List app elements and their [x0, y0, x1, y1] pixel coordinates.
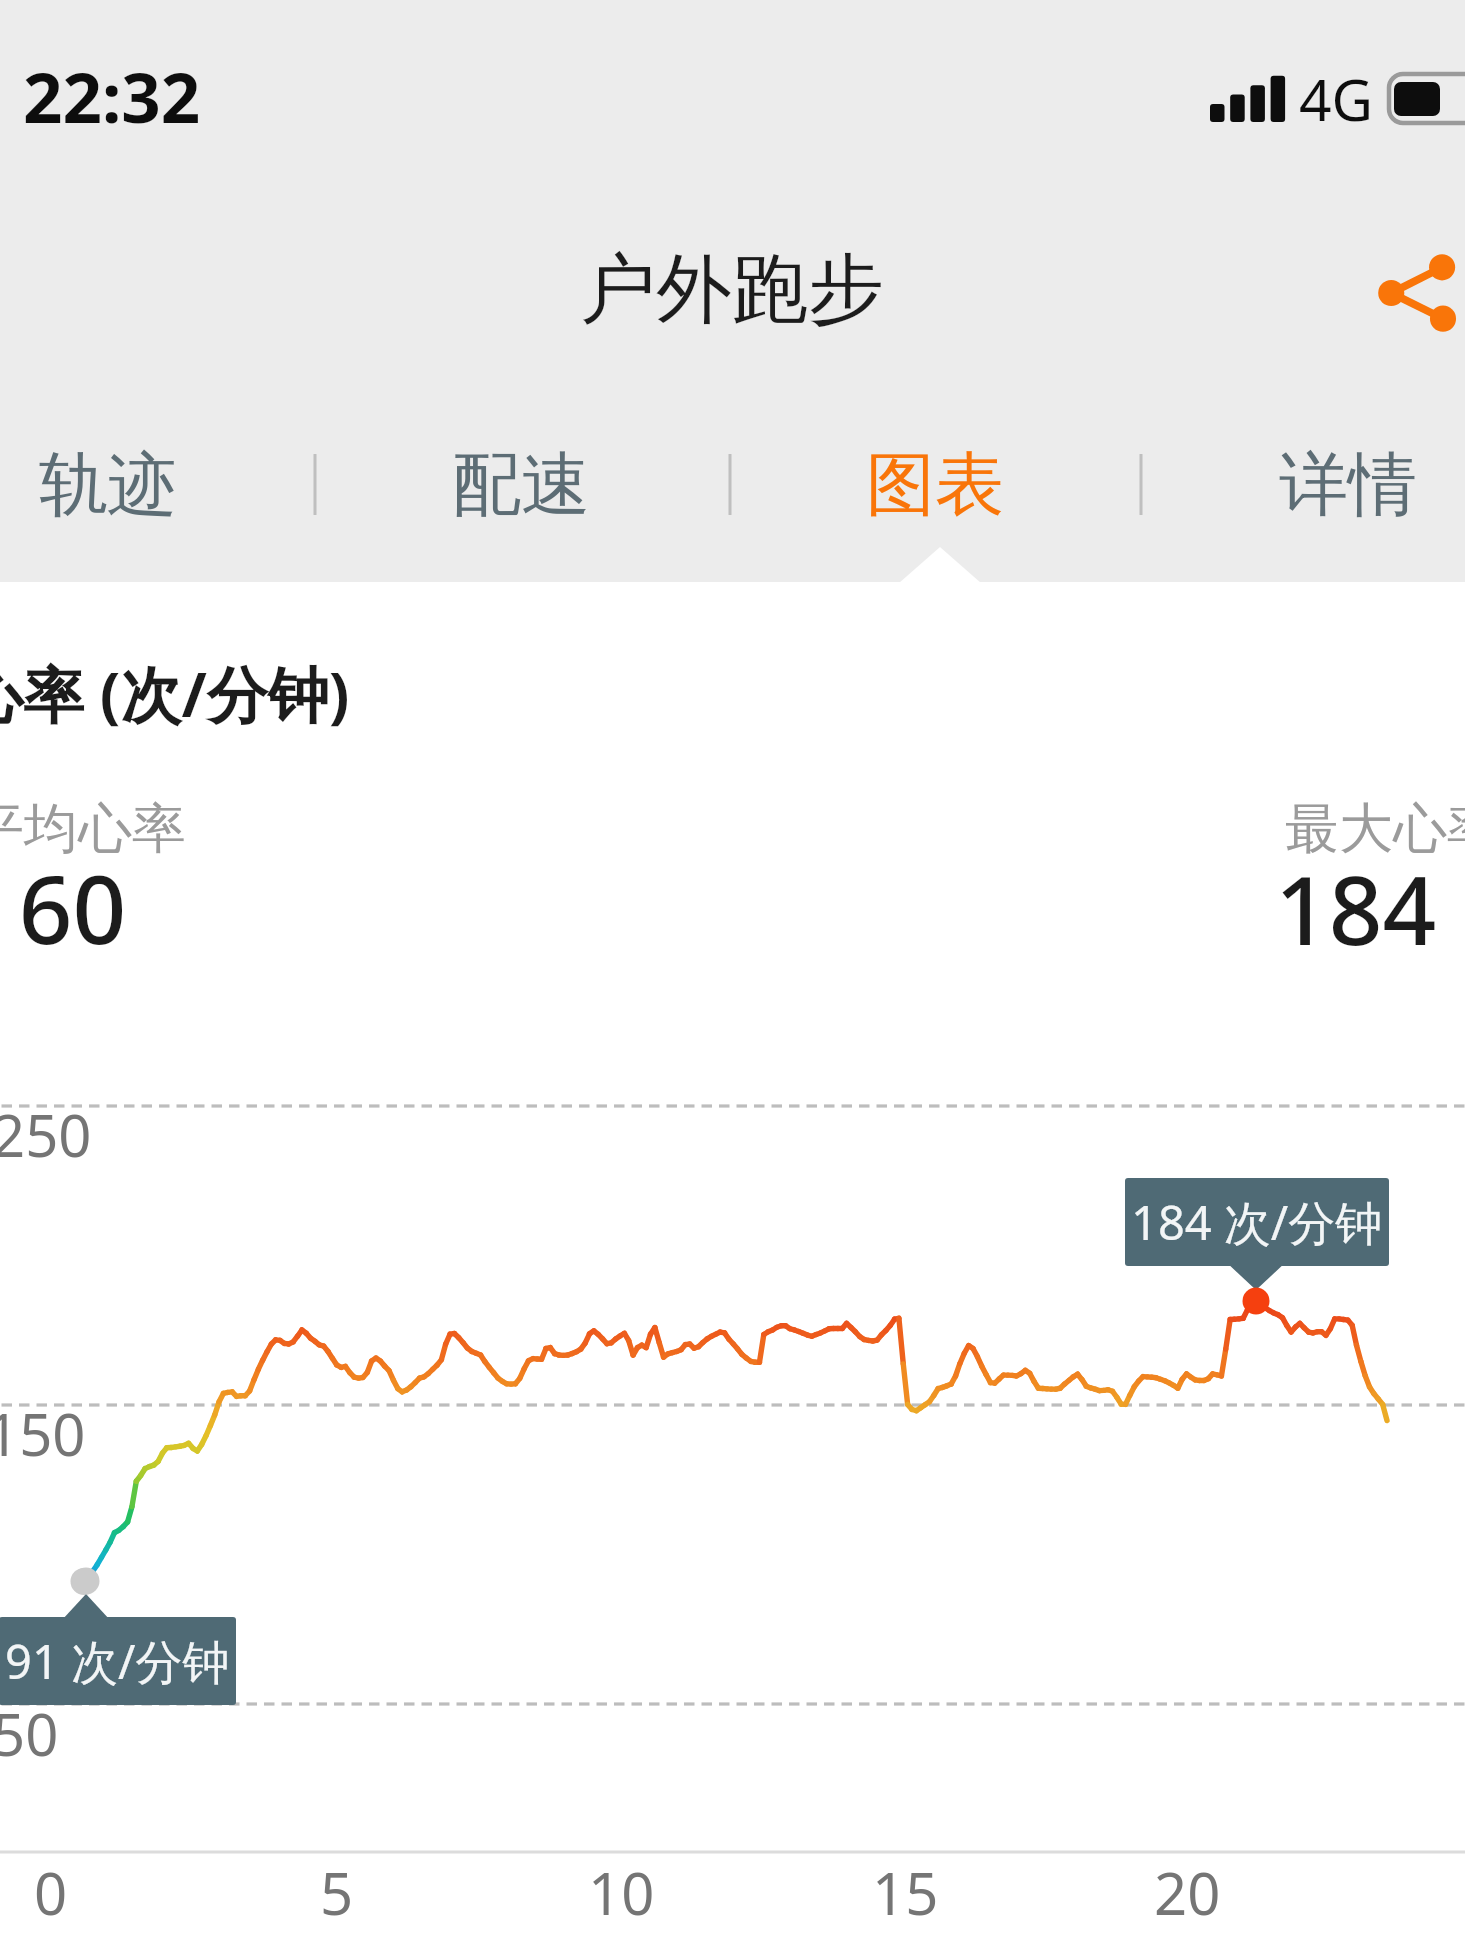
- button[interactable]: 轨迹: [0, 420, 248, 582]
- staticText: 轨迹: [39, 442, 177, 529]
- staticText: 户外跑步: [580, 242, 884, 338]
- staticText: 5: [320, 1853, 354, 1932]
- staticText: 10: [588, 1853, 655, 1932]
- staticText: 184: [1275, 845, 1437, 973]
- staticText: 50: [0, 1694, 59, 1773]
- staticText: 15: [872, 1853, 939, 1932]
- staticText: 20: [1154, 1853, 1221, 1932]
- staticText: 91 次/分钟: [5, 1629, 230, 1693]
- staticText: 160: [0, 844, 127, 972]
- staticText: 250: [0, 1095, 92, 1174]
- button[interactable]: 配速: [381, 420, 661, 582]
- staticText: 心率 (次/分钟): [0, 652, 350, 735]
- staticText: 184 次/分钟: [1131, 1190, 1383, 1254]
- button[interactable]: 图表: [795, 420, 1075, 582]
- staticText: 4G: [1299, 60, 1374, 138]
- button[interactable]: Share: [1371, 248, 1461, 338]
- staticText: 0: [34, 1853, 68, 1932]
- staticText: 图表: [866, 442, 1004, 529]
- button[interactable]: 详情: [1208, 420, 1465, 582]
- staticText: 最大心率: [1285, 795, 1465, 863]
- staticText: 150: [0, 1394, 86, 1473]
- staticText: 平均心率: [0, 795, 186, 863]
- staticText: 配速: [452, 442, 590, 529]
- staticText: 详情: [1279, 442, 1417, 529]
- staticText: 22:32: [23, 49, 201, 143]
